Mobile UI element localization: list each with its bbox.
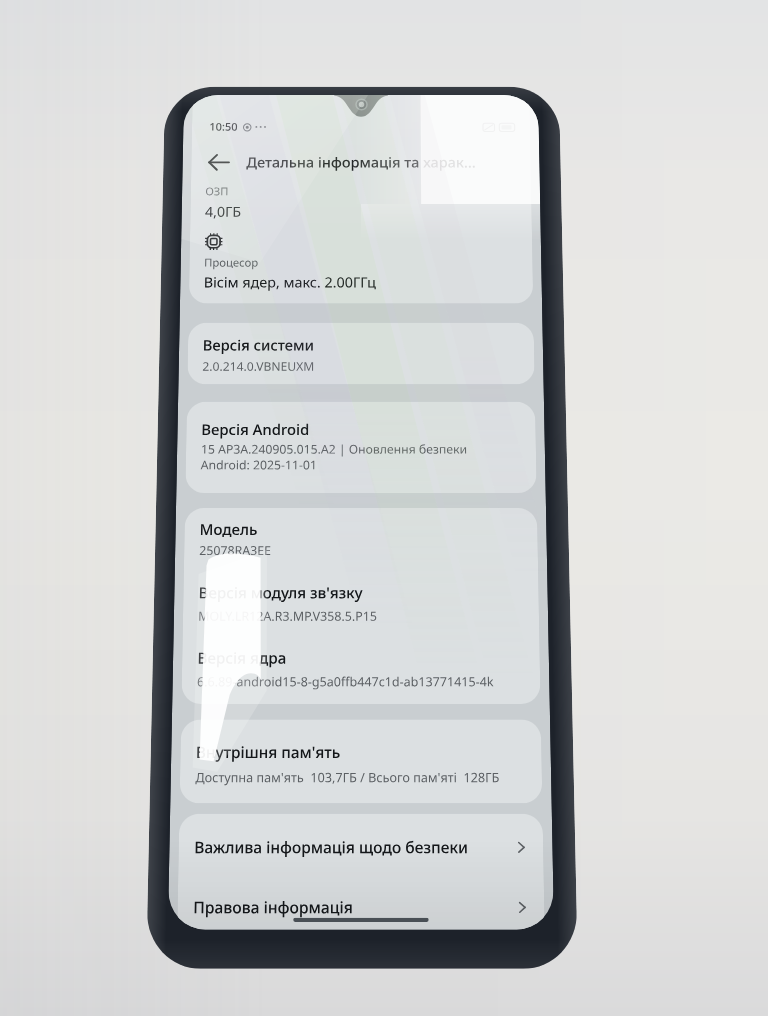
staticText: 2.0.214.0.VBNEUXM	[202, 358, 315, 375]
staticText: Внутрішня пам'ять	[196, 741, 340, 762]
button[interactable]: Back	[202, 146, 235, 178]
staticText: ОЗП	[205, 184, 229, 199]
staticText: Android: 2025-11-01	[201, 457, 317, 473]
button[interactable]: Важлива інформація щодо безпеки	[178, 817, 544, 877]
staticText: Версія Android	[201, 419, 309, 439]
staticText: Правова інформація	[193, 896, 354, 918]
staticText: Версія модуля зв'язку	[198, 582, 363, 602]
staticText: 15 AP3A.240905.015.A2 | Оновлення безпек…	[201, 441, 467, 457]
staticText: Детальна інформація та харак...	[246, 153, 476, 171]
staticText: Процесор	[204, 255, 259, 270]
staticText: Важлива інформація щодо безпеки	[194, 836, 469, 857]
staticText: MOLY.LR12A.R3.MP.V358.5.P15	[198, 607, 377, 625]
staticText: Версія системи	[203, 335, 315, 354]
staticText: Модель	[199, 519, 258, 539]
staticText: 25078RA3EE	[199, 542, 272, 559]
staticText: Версія ядра	[197, 647, 287, 668]
staticText: Вісім ядер, макс. 2.00ГГц	[204, 272, 377, 291]
staticText: 4,0ГБ	[205, 202, 242, 220]
button[interactable]: Правова інформація	[177, 880, 545, 929]
staticText: 6.6.89-android15-8-g5a0ffb447c1d-ab13771…	[197, 673, 494, 690]
staticText: Доступна пам'ять 103,7ГБ / Всього пам'ят…	[195, 768, 500, 786]
staticText: 10:50	[209, 120, 238, 134]
